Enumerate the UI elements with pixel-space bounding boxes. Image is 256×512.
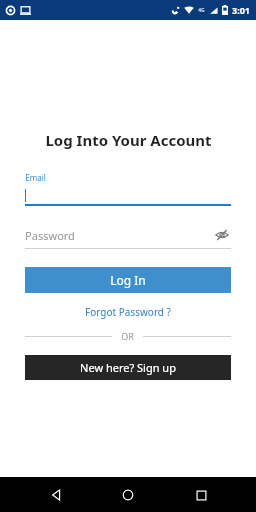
staticText: 4G: [198, 7, 205, 14]
staticText: New here? Sign up: [80, 360, 176, 375]
button[interactable]: Back: [39, 478, 73, 512]
button[interactable]: Recent apps: [184, 478, 218, 512]
button[interactable]: Email: [25, 172, 231, 206]
staticText: Forgot Password ?: [85, 305, 171, 319]
button[interactable]: New here? Sign up: [25, 355, 231, 380]
staticText: Email: [25, 172, 46, 183]
button[interactable]: Log In: [25, 267, 231, 293]
staticText: OR: [121, 330, 134, 342]
button[interactable]: Show password: [213, 226, 231, 244]
button[interactable]: Home: [111, 478, 145, 512]
button[interactable]: Password: [25, 226, 231, 249]
staticText: Log In: [110, 272, 146, 288]
staticText: Password: [25, 228, 75, 243]
staticText: 3:01: [232, 4, 250, 16]
button[interactable]: Forgot Password ?: [25, 304, 231, 320]
staticText: Log Into Your Account: [45, 130, 212, 150]
